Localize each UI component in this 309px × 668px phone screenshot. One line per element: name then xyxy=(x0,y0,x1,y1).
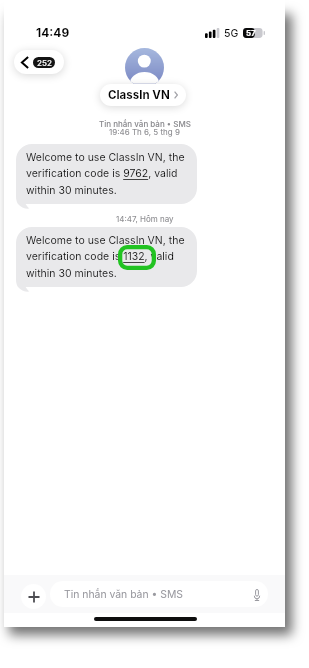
staticText: 57 xyxy=(246,28,256,38)
staticText: Welcome to use ClassIn VN, the verificat… xyxy=(26,151,190,197)
staticText: 5G xyxy=(224,27,239,40)
staticText: ClassIn VN xyxy=(108,88,170,102)
button[interactable]: Contact avatar xyxy=(125,48,164,87)
staticText: Tin nhắn văn bản • SMS xyxy=(99,119,191,129)
button[interactable]: Welcome to use ClassIn VN, the verificat… xyxy=(16,227,197,287)
staticText: 14:49 xyxy=(36,25,70,40)
button[interactable]: More options xyxy=(21,584,46,609)
staticText: 19:46 Th 6, 5 thg 9 xyxy=(109,127,180,137)
button[interactable]: Tin nhắn văn bản • SMS xyxy=(50,581,268,607)
staticText: Welcome to use ClassIn VN, the verificat… xyxy=(26,234,190,280)
button[interactable]: ClassIn VN xyxy=(100,84,186,106)
button[interactable]: Back, 252 unread xyxy=(14,50,64,74)
button[interactable]: Welcome to use ClassIn VN, the verificat… xyxy=(16,144,197,204)
staticText: 14:47, Hôm nay xyxy=(116,214,174,224)
staticText: 252 xyxy=(37,58,52,68)
staticText: Tin nhắn văn bản • SMS xyxy=(64,588,183,601)
